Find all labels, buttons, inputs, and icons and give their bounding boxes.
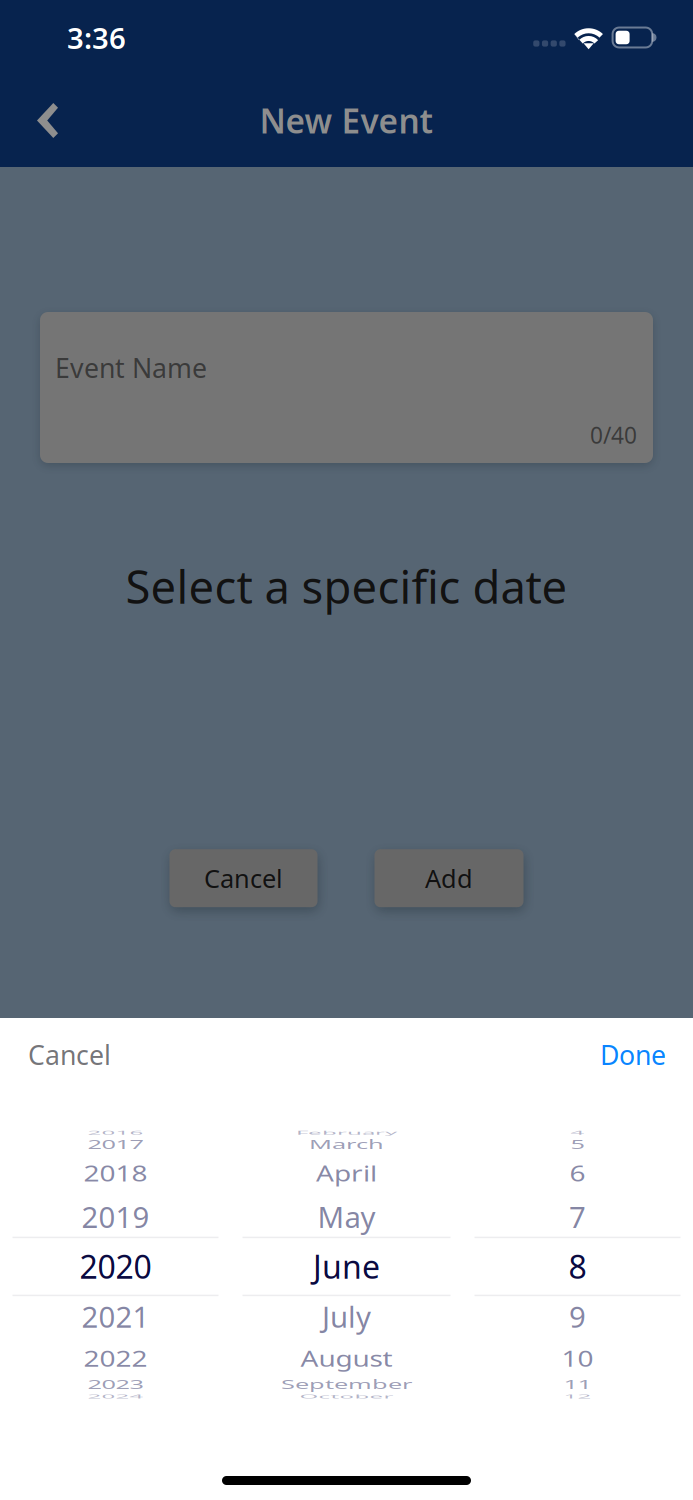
staticText: 10	[561, 1339, 593, 1377]
staticText: 11	[563, 1367, 591, 1401]
staticText: Done	[600, 1037, 666, 1072]
staticText: 5	[570, 1127, 584, 1161]
staticText: 2017	[87, 1127, 143, 1161]
staticText: 2020	[79, 1245, 151, 1288]
staticText: April	[316, 1154, 377, 1192]
staticText: Cancel	[204, 861, 283, 895]
staticText: 4	[570, 1117, 584, 1149]
staticText: May	[317, 1197, 375, 1236]
staticText: 2023	[87, 1367, 143, 1401]
button[interactable]: Cancel	[169, 849, 317, 907]
button[interactable]: Done	[576, 1023, 693, 1086]
staticText: July	[322, 1297, 371, 1336]
staticText: New Event	[259, 98, 433, 143]
staticText: 2024	[87, 1381, 143, 1413]
staticText: Event Name	[55, 350, 207, 385]
staticText: 2019	[81, 1197, 149, 1236]
staticText: Cancel	[28, 1037, 111, 1072]
staticText: 2018	[83, 1154, 147, 1192]
staticText: 0/40	[590, 420, 637, 450]
staticText: 8	[568, 1245, 586, 1288]
staticText: 2021	[81, 1297, 149, 1336]
staticText: 9	[569, 1297, 586, 1336]
staticText: Add	[425, 861, 473, 895]
staticText: June	[313, 1245, 380, 1288]
staticText: 12	[563, 1381, 591, 1413]
staticText: August	[300, 1339, 392, 1377]
staticText: February	[296, 1117, 397, 1149]
button[interactable]: Add	[374, 849, 523, 907]
button[interactable]: Back	[0, 88, 84, 159]
staticText: 2022	[83, 1339, 147, 1377]
staticText: 3:36	[67, 18, 126, 57]
staticText: 6	[569, 1154, 585, 1192]
staticText: March	[309, 1127, 384, 1161]
staticText: 7	[569, 1197, 586, 1236]
staticText: Select a specific date	[125, 556, 567, 616]
staticText: September	[281, 1367, 412, 1401]
staticText: 2016	[87, 1117, 143, 1149]
staticText: October	[299, 1381, 393, 1413]
button[interactable]: Cancel	[0, 1023, 135, 1086]
